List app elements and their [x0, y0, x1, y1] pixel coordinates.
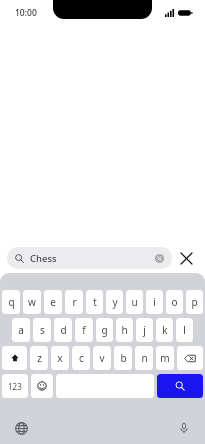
button[interactable]: o	[166, 290, 183, 314]
button[interactable]: i	[146, 290, 163, 314]
staticText: g	[101, 323, 108, 337]
button[interactable]: j	[136, 318, 153, 342]
staticText: u	[131, 295, 138, 309]
staticText: f	[82, 323, 86, 337]
staticText: Chess	[30, 252, 154, 265]
staticText: q	[8, 295, 15, 309]
button[interactable]: f	[75, 318, 93, 342]
staticText: o	[171, 295, 178, 309]
staticText: j	[143, 323, 146, 337]
staticText: t	[93, 295, 97, 309]
button[interactable]: s	[33, 318, 51, 342]
button[interactable]: m	[156, 346, 174, 370]
button[interactable]: g	[96, 318, 113, 342]
button[interactable]: k	[156, 318, 173, 342]
staticText: e	[50, 295, 56, 309]
button[interactable]: w	[23, 290, 41, 314]
button[interactable]: l	[176, 318, 193, 342]
button[interactable]: Voice input	[174, 418, 194, 438]
staticText: d	[60, 323, 67, 337]
button[interactable]: a	[12, 318, 30, 342]
button[interactable]: e	[44, 290, 62, 314]
staticText: a	[18, 323, 24, 337]
staticText: k	[162, 323, 168, 337]
staticText: w	[28, 295, 36, 309]
staticText: l	[183, 323, 186, 337]
staticText: i	[153, 295, 156, 309]
staticText: m	[160, 351, 170, 365]
button[interactable]: p	[186, 290, 203, 314]
staticText: p	[191, 295, 198, 309]
button[interactable]: y	[106, 290, 123, 314]
staticText: 10:00	[15, 7, 37, 19]
button[interactable]: z	[30, 346, 48, 370]
button[interactable]: c	[72, 346, 90, 370]
button[interactable]: Search	[157, 374, 203, 398]
staticText: b	[120, 351, 127, 365]
button[interactable]: d	[54, 318, 72, 342]
staticText: v	[99, 351, 105, 365]
button[interactable]: Backspace	[177, 346, 203, 370]
button[interactable]: Chess	[7, 247, 172, 269]
button[interactable]: v	[93, 346, 111, 370]
button[interactable]: Change language	[11, 418, 31, 438]
button[interactable]: r	[65, 290, 83, 314]
button[interactable]: Close search	[172, 244, 200, 272]
button[interactable]: q	[2, 290, 20, 314]
staticText: s	[40, 323, 45, 337]
staticText: 123	[8, 381, 22, 392]
button[interactable]: h	[116, 318, 133, 342]
button[interactable]: Emoji	[31, 374, 53, 398]
button[interactable]: Clear query	[154, 253, 165, 264]
staticText: c	[79, 351, 84, 365]
button[interactable]: Shift	[2, 346, 27, 370]
button[interactable]: x	[51, 346, 69, 370]
button[interactable]: n	[135, 346, 153, 370]
staticText: h	[121, 323, 128, 337]
staticText: r	[72, 295, 77, 309]
staticText: y	[112, 295, 118, 309]
button[interactable]: u	[126, 290, 143, 314]
staticText: z	[37, 351, 42, 365]
button[interactable]: b	[114, 346, 132, 370]
staticText: x	[57, 351, 63, 365]
button[interactable]: 123	[2, 374, 28, 398]
staticText: n	[141, 351, 148, 365]
button[interactable]: t	[86, 290, 103, 314]
